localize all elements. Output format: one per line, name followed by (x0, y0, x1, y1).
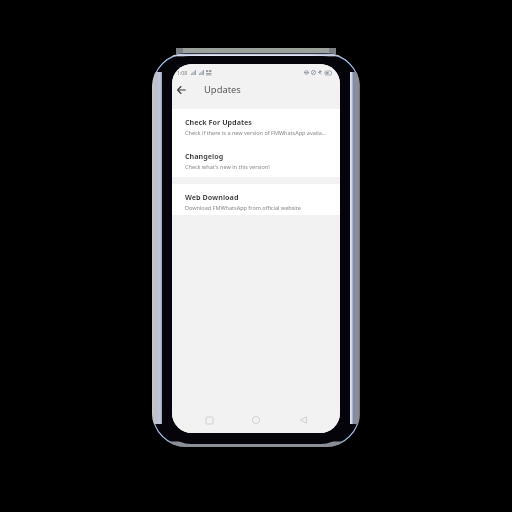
button[interactable]: Changelog (172, 143, 340, 177)
staticText: Download FMWhatsApp from official websit… (185, 204, 301, 211)
staticText: Check what's new in this version! (185, 163, 270, 170)
staticText: 1:08 (177, 69, 188, 76)
button[interactable]: Back (292, 409, 314, 431)
staticText: Check For Updates (185, 117, 252, 127)
button[interactable]: Back (172, 77, 191, 103)
staticText: Check if there is a new version of FMWha… (185, 129, 327, 136)
button[interactable]: Home (245, 409, 267, 431)
staticText: Updates (204, 83, 241, 96)
button[interactable]: Recent apps (198, 409, 220, 431)
staticText: Changelog (185, 151, 224, 161)
button[interactable]: Check For Updates (172, 109, 340, 143)
button[interactable]: Web Download (172, 184, 340, 215)
staticText: Web Download (185, 192, 239, 202)
